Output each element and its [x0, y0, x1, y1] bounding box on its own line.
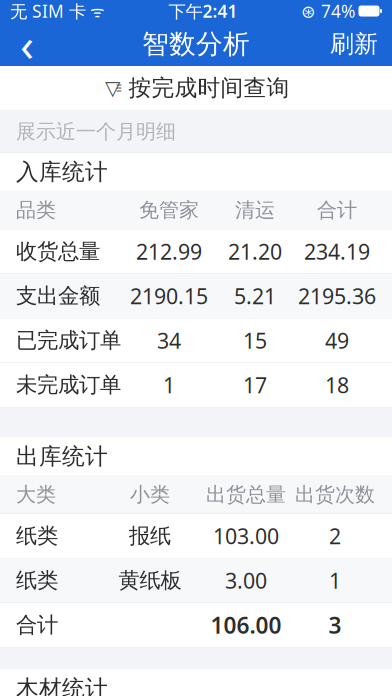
staticText: 黄纸板 [118, 567, 181, 594]
staticText: 展示近一个月明细 [16, 119, 176, 144]
staticText: 2190.15 [130, 282, 208, 310]
staticText: 2 [329, 522, 341, 550]
staticText: 17 [243, 371, 267, 399]
staticText: ⊛ 74% [301, 0, 355, 22]
staticText: ▽ [105, 77, 120, 99]
staticText: 合计 [317, 198, 357, 222]
staticText: 3 [328, 610, 341, 640]
staticText: 212.99 [136, 237, 202, 266]
staticText: 纸类 [16, 523, 58, 549]
button[interactable]: 刷新 [316, 22, 392, 66]
staticText: 出库统计 [16, 443, 108, 470]
staticText: 入库统计 [16, 158, 108, 186]
staticText: 下午2:41 [168, 0, 237, 22]
staticText: 未完成订单 [16, 372, 121, 398]
staticText: 出货次数 [295, 482, 375, 507]
button[interactable]: 返回 [0, 22, 54, 66]
staticText: 免管家 [139, 198, 199, 222]
staticText: 支出金额 [16, 283, 100, 309]
staticText: 5.21 [234, 282, 276, 310]
staticText: 49 [325, 326, 349, 355]
staticText: 小类 [130, 482, 170, 507]
staticText: 大类 [16, 482, 56, 507]
staticText: 18 [325, 371, 349, 399]
staticText: 报纸 [129, 523, 171, 549]
staticText: 103.00 [213, 522, 279, 550]
staticText: 2195.36 [298, 282, 376, 310]
staticText: 智数分析 [142, 28, 250, 60]
staticText: 106.00 [210, 610, 281, 640]
staticText: 234.19 [304, 237, 370, 266]
staticText: 合计 [16, 612, 58, 638]
staticText: 按完成时间查询 [128, 74, 289, 102]
button[interactable]: ▽ [0, 66, 392, 110]
staticText: 出货总量 [206, 482, 286, 507]
staticText: 15 [243, 326, 267, 355]
staticText: 1 [163, 371, 175, 399]
staticText: 刷新 [330, 29, 378, 59]
staticText: 1 [329, 566, 341, 595]
staticText: 无 SIM 卡 [10, 0, 86, 22]
staticText: ‹ [20, 14, 34, 74]
staticText: ᯤ [86, 0, 105, 22]
staticText: 品类 [16, 198, 56, 222]
staticText: 3.00 [225, 566, 267, 595]
staticText: 已完成订单 [16, 327, 121, 354]
staticText: 21.20 [228, 237, 282, 266]
staticText: 木材统计 [16, 675, 108, 696]
staticText: 收货总量 [16, 238, 100, 265]
staticText: 34 [157, 326, 181, 355]
staticText: 纸类 [16, 567, 58, 594]
staticText: 清运 [235, 198, 275, 222]
